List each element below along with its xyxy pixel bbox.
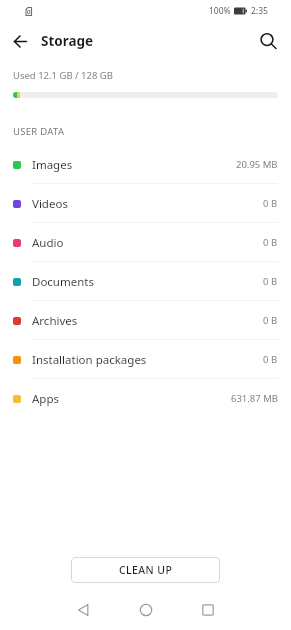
button[interactable] <box>254 27 282 55</box>
button[interactable] <box>195 597 221 623</box>
staticText: Documents <box>32 274 94 290</box>
button[interactable] <box>133 597 159 623</box>
staticText: Used 12.1 GB / 128 GB <box>13 69 113 82</box>
staticText: 0 B <box>263 314 278 327</box>
button[interactable] <box>71 597 97 623</box>
button[interactable]: Documents <box>0 262 291 301</box>
staticText: 631.87 MB <box>231 392 278 405</box>
button[interactable] <box>7 28 33 54</box>
staticText: Apps <box>32 391 60 407</box>
button[interactable]: Audio <box>0 223 291 262</box>
staticText: 20.95 MB <box>236 158 278 171</box>
staticText: Videos <box>32 196 68 212</box>
staticText: 0 B <box>263 197 278 210</box>
staticText: Audio <box>32 235 64 251</box>
staticText: 0 B <box>263 236 278 249</box>
staticText: CLEAN UP <box>119 563 173 577</box>
button[interactable]: CLEAN UP <box>71 557 220 583</box>
staticText: 100% <box>209 5 231 17</box>
staticText: Archives <box>32 313 78 329</box>
button[interactable]: Images <box>0 145 291 184</box>
button[interactable]: Archives <box>0 301 291 340</box>
staticText: Installation packages <box>32 352 147 368</box>
staticText: 0 B <box>263 353 278 366</box>
button[interactable]: Videos <box>0 184 291 223</box>
button[interactable]: Apps <box>0 379 291 418</box>
staticText: 0 B <box>263 275 278 288</box>
staticText: Images <box>32 157 73 173</box>
button[interactable]: Installation packages <box>0 340 291 379</box>
staticText: USER DATA <box>13 125 65 138</box>
staticText: 2:35 <box>251 5 268 17</box>
staticText: Storage <box>41 32 94 50</box>
